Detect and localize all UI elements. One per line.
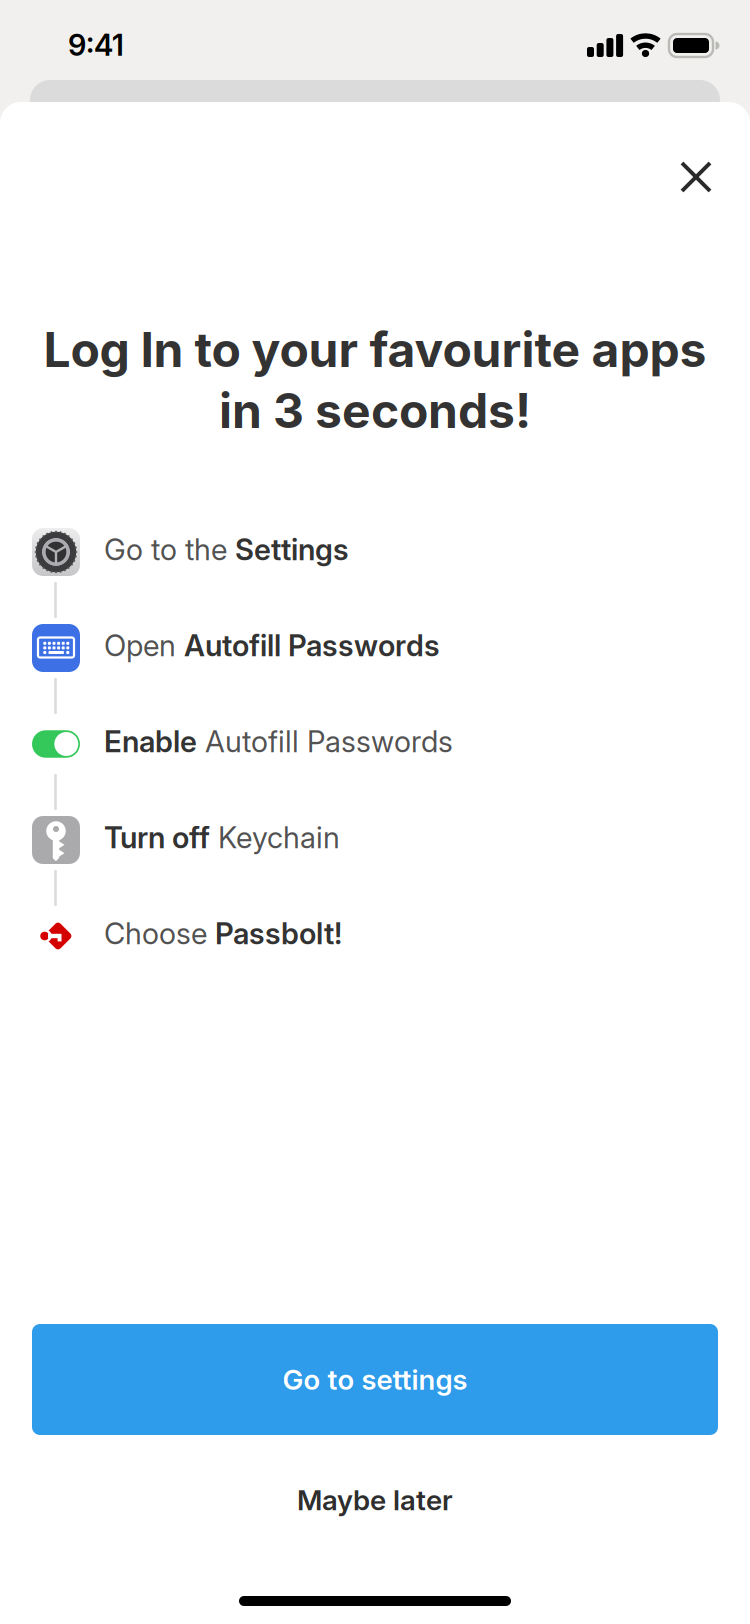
staticText: Passbolt!: [215, 916, 342, 951]
staticText: in 3 seconds!: [219, 382, 531, 439]
staticText: Go to the: [104, 532, 235, 567]
staticText: Enable: [104, 724, 197, 759]
staticText: Turn off: [104, 820, 210, 855]
staticText: Open: [104, 628, 184, 663]
staticText: Settings: [235, 532, 349, 567]
staticText: 9:41: [68, 28, 124, 62]
staticText: Keychain: [210, 820, 340, 855]
staticText: Log In to your favourite apps: [43, 321, 706, 378]
button[interactable]: Close: [666, 147, 726, 207]
staticText: Go to settings: [282, 1363, 467, 1396]
staticText: Maybe later: [297, 1483, 453, 1516]
button[interactable]: Go to settings: [32, 1324, 718, 1435]
staticText: Autofill Passwords: [197, 724, 453, 759]
button[interactable]: Maybe later: [175, 1470, 575, 1530]
staticText: Autofill Passwords: [184, 628, 440, 663]
staticText: Choose: [104, 916, 215, 951]
